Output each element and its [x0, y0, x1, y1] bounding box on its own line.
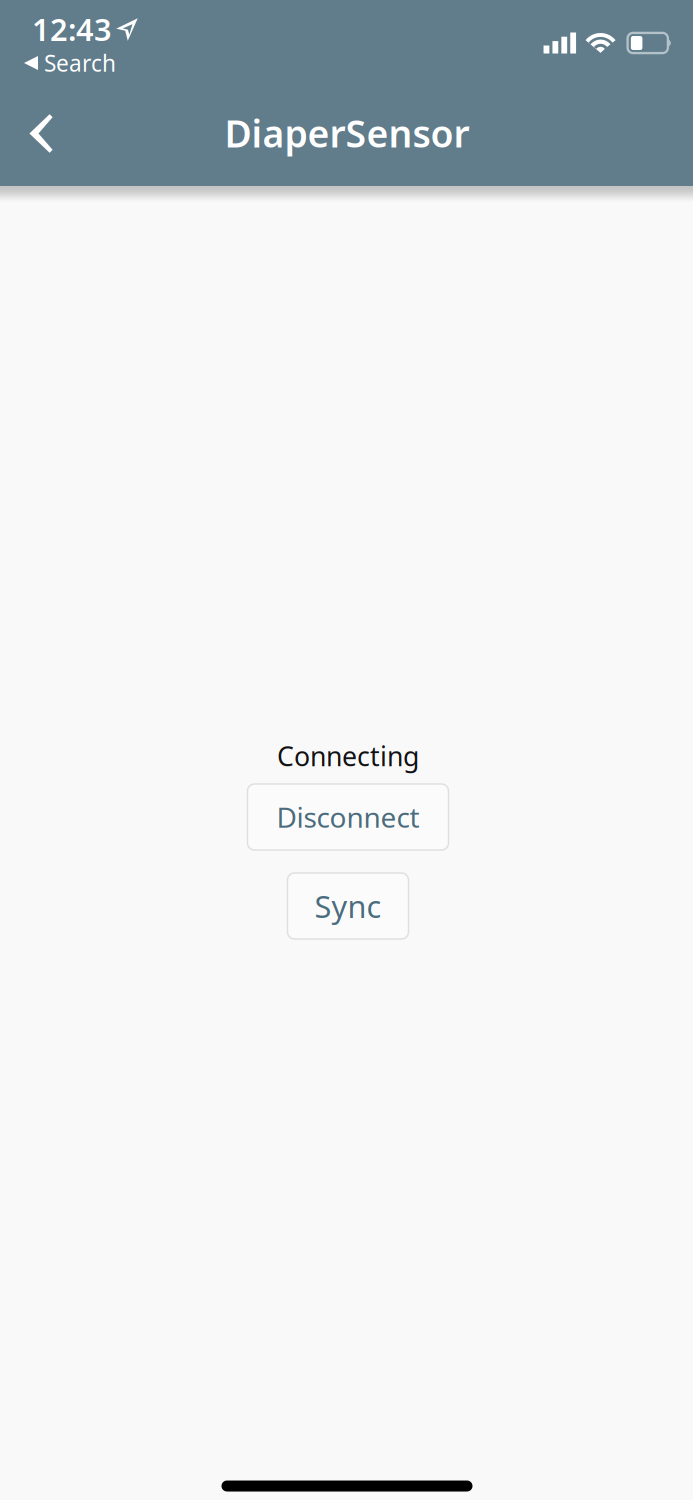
staticText: Sync — [314, 886, 381, 926]
staticText: Disconnect — [276, 798, 419, 836]
staticText: Search — [44, 48, 116, 78]
button[interactable]: Sync — [287, 873, 408, 939]
button[interactable]: Disconnect — [247, 784, 448, 850]
staticText: Connecting — [277, 738, 419, 774]
staticText: DiaperSensor — [224, 108, 469, 158]
staticText: 12:43 — [32, 9, 112, 49]
button[interactable]: Back — [3, 95, 79, 171]
